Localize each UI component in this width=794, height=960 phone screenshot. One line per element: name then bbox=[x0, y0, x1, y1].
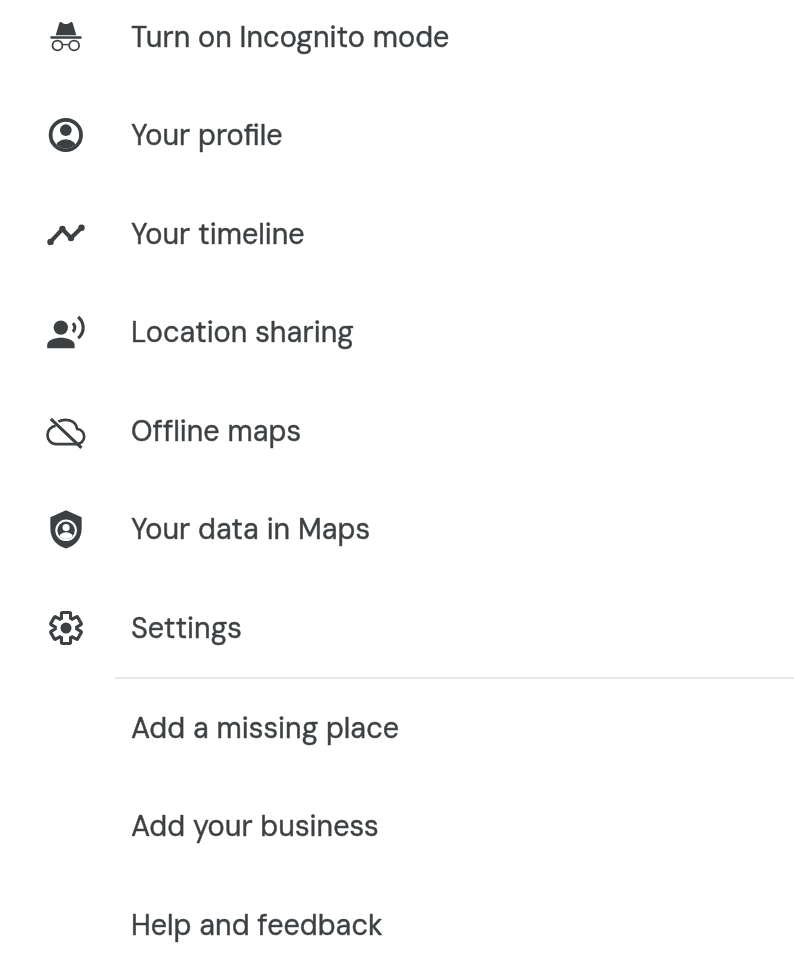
button[interactable]: Add your business bbox=[0, 776, 794, 875]
staticText: Offline maps bbox=[131, 412, 302, 449]
button[interactable]: Your data in Maps bbox=[0, 479, 794, 578]
staticText: Your timeline bbox=[131, 215, 305, 252]
staticText: Turn on Incognito mode bbox=[131, 18, 450, 55]
staticText: Settings bbox=[131, 609, 242, 646]
staticText: Your data in Maps bbox=[131, 510, 371, 547]
staticText: Your data in Maps bbox=[131, 510, 371, 547]
staticText: Add your business bbox=[131, 807, 379, 844]
staticText: Add a missing place bbox=[131, 709, 400, 746]
staticText: Your timeline bbox=[131, 215, 305, 252]
staticText: Add your business bbox=[131, 807, 379, 844]
staticText: Help and feedback bbox=[131, 906, 383, 943]
button[interactable]: Your timeline bbox=[0, 184, 794, 283]
staticText: Your profile bbox=[131, 116, 283, 153]
staticText: Your profile bbox=[131, 116, 283, 153]
staticText: Add a missing place bbox=[131, 709, 400, 746]
button[interactable]: Offline maps bbox=[0, 381, 794, 480]
button[interactable]: Add a missing place bbox=[0, 678, 794, 777]
button[interactable]: Your profile bbox=[0, 85, 794, 184]
staticText: Help and feedback bbox=[131, 906, 383, 943]
button[interactable]: Turn on Incognito mode bbox=[0, 0, 794, 86]
staticText: Turn on Incognito mode bbox=[131, 18, 450, 55]
staticText: Settings bbox=[131, 609, 242, 646]
button[interactable]: Settings bbox=[0, 578, 794, 677]
button[interactable]: Location sharing bbox=[0, 282, 794, 381]
staticText: Offline maps bbox=[131, 412, 302, 449]
button[interactable]: Help and feedback bbox=[0, 875, 794, 960]
staticText: Location sharing bbox=[131, 313, 354, 350]
staticText: Location sharing bbox=[131, 313, 354, 350]
